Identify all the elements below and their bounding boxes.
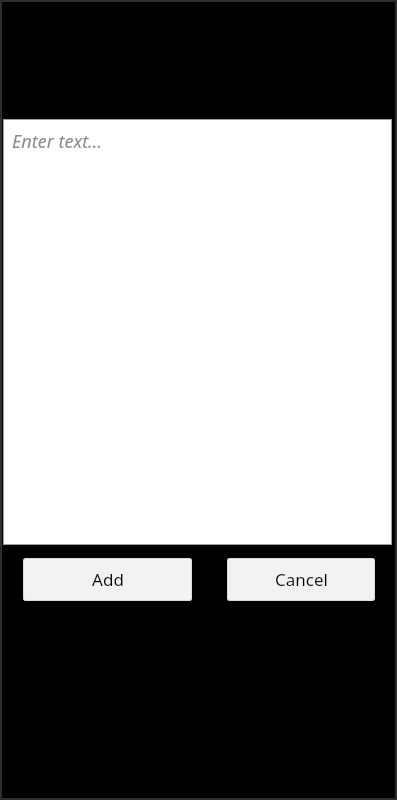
staticText: Enter text... xyxy=(12,129,102,154)
button[interactable]: Enter text... xyxy=(3,119,392,545)
staticText: Add xyxy=(92,568,124,591)
staticText: Cancel xyxy=(275,568,328,591)
button[interactable]: Add xyxy=(23,558,192,601)
button[interactable]: Cancel xyxy=(227,558,375,601)
